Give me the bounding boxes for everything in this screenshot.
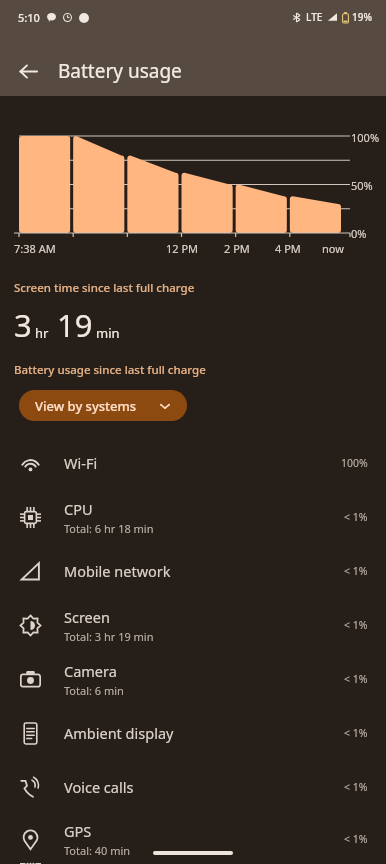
button[interactable]: GPS [0, 814, 386, 864]
button[interactable]: Ambient display [0, 706, 386, 760]
staticText: min [96, 324, 120, 342]
staticText: Total: 6 hr 18 min [64, 521, 154, 536]
button[interactable]: Wi-Fi [0, 436, 386, 490]
staticText: 2 PM [224, 241, 250, 256]
staticText: 0% [351, 226, 367, 241]
staticText: 7:38 AM [14, 241, 56, 256]
staticText: 4 PM [275, 241, 301, 256]
staticText: Battery usage [58, 58, 182, 84]
staticText: LTE [306, 10, 323, 24]
staticText: Voice calls [64, 777, 134, 797]
button[interactable]: View by systems [19, 390, 187, 421]
staticText: Mobile network [64, 561, 171, 581]
staticText: GPS [64, 821, 92, 841]
button[interactable]: Mobile network [0, 544, 386, 598]
staticText: 12 PM [166, 241, 199, 256]
staticText: Screen time since last full charge [14, 280, 195, 296]
staticText: < 1% [344, 564, 368, 578]
staticText: 100% [351, 130, 380, 145]
button[interactable]: Screen [0, 598, 386, 652]
staticText: < 1% [344, 832, 368, 846]
staticText: Screen [64, 607, 110, 627]
staticText: hr [35, 324, 49, 342]
staticText: 100% [341, 456, 368, 470]
staticText: Total: 6 min [64, 683, 124, 698]
staticText: 3 [14, 304, 32, 346]
button[interactable]: Voice calls [0, 760, 386, 814]
button[interactable]: Camera [0, 652, 386, 706]
button[interactable]: Back [6, 49, 50, 93]
staticText: < 1% [344, 780, 368, 794]
staticText: Total: 40 min [64, 843, 131, 858]
staticText: 50% [351, 178, 373, 193]
staticText: CPU [64, 499, 93, 519]
staticText: < 1% [344, 510, 368, 524]
staticText: < 1% [344, 726, 368, 740]
staticText: View by systems [35, 397, 137, 415]
staticText: Ambient display [64, 723, 174, 743]
staticText: < 1% [344, 618, 368, 632]
staticText: Camera [64, 661, 117, 681]
staticText: 19 [57, 304, 93, 346]
staticText: < 1% [344, 672, 368, 686]
staticText: Total: 3 hr 19 min [64, 629, 154, 644]
staticText: now [322, 241, 344, 256]
button[interactable]: CPU [0, 490, 386, 544]
staticText: Battery usage since last full charge [14, 362, 206, 378]
staticText: Wi-Fi [64, 453, 98, 473]
staticText: 19% [352, 10, 372, 24]
staticText: 5:10 [18, 10, 40, 25]
